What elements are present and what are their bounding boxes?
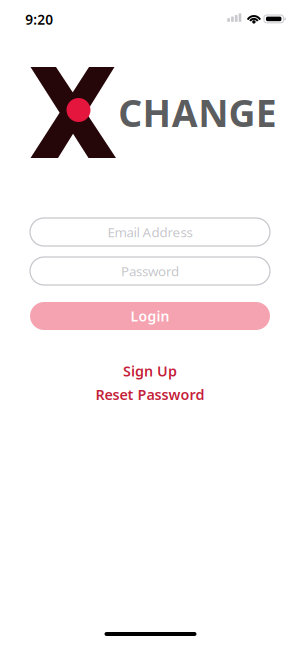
button[interactable]: Sign Up: [123, 361, 177, 381]
staticText: Email Address: [107, 223, 192, 241]
staticText: Login: [130, 306, 169, 326]
staticText: Sign Up: [123, 361, 177, 381]
staticText: CHANGE: [118, 87, 277, 138]
staticText: Password: [121, 262, 179, 280]
button[interactable]: Login: [30, 302, 270, 330]
textField[interactable]: Email Address: [30, 217, 270, 247]
button[interactable]: Reset Password: [95, 385, 204, 404]
staticText: Email Address: [30, 217, 181, 247]
staticText: 9:20: [25, 10, 53, 29]
textField[interactable]: Password: [30, 256, 270, 286]
staticText: Password: [30, 256, 134, 286]
staticText: Reset Password: [95, 385, 204, 404]
